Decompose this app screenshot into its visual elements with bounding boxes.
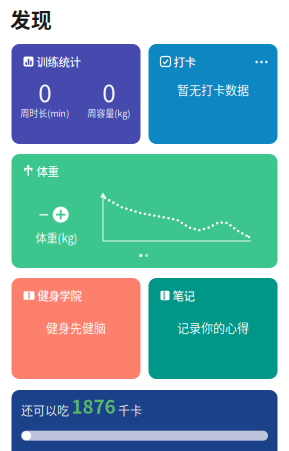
staticText: 0	[38, 75, 51, 109]
staticText: 暂无打卡数据	[177, 81, 249, 99]
staticText: 笔记	[172, 287, 194, 304]
staticText: 发现	[10, 4, 52, 34]
button[interactable]: 打卡	[148, 44, 277, 144]
staticText: 健身学院	[37, 287, 81, 304]
staticText: 0	[102, 75, 115, 109]
staticText: 千卡	[118, 402, 142, 419]
staticText: 记录你的心得	[177, 319, 249, 337]
button[interactable]: 笔记	[148, 278, 277, 379]
staticText: 打卡	[173, 53, 195, 70]
staticText: 1876	[71, 392, 115, 419]
staticText: 训练统计	[36, 53, 80, 70]
staticText: 体重	[36, 163, 58, 179]
button[interactable]: 还可以吃	[11, 390, 277, 451]
staticText: 周时长(min)	[20, 106, 69, 119]
staticText: 还可以吃	[21, 402, 69, 419]
staticText: 健身先健脑	[46, 319, 106, 337]
staticText: 体重(kg)	[35, 229, 77, 246]
button[interactable]: 训练统计	[11, 44, 140, 144]
staticText: 周容量(kg)	[87, 106, 130, 119]
button[interactable]: 体重	[11, 154, 277, 268]
button[interactable]: 健身学院	[11, 278, 140, 379]
